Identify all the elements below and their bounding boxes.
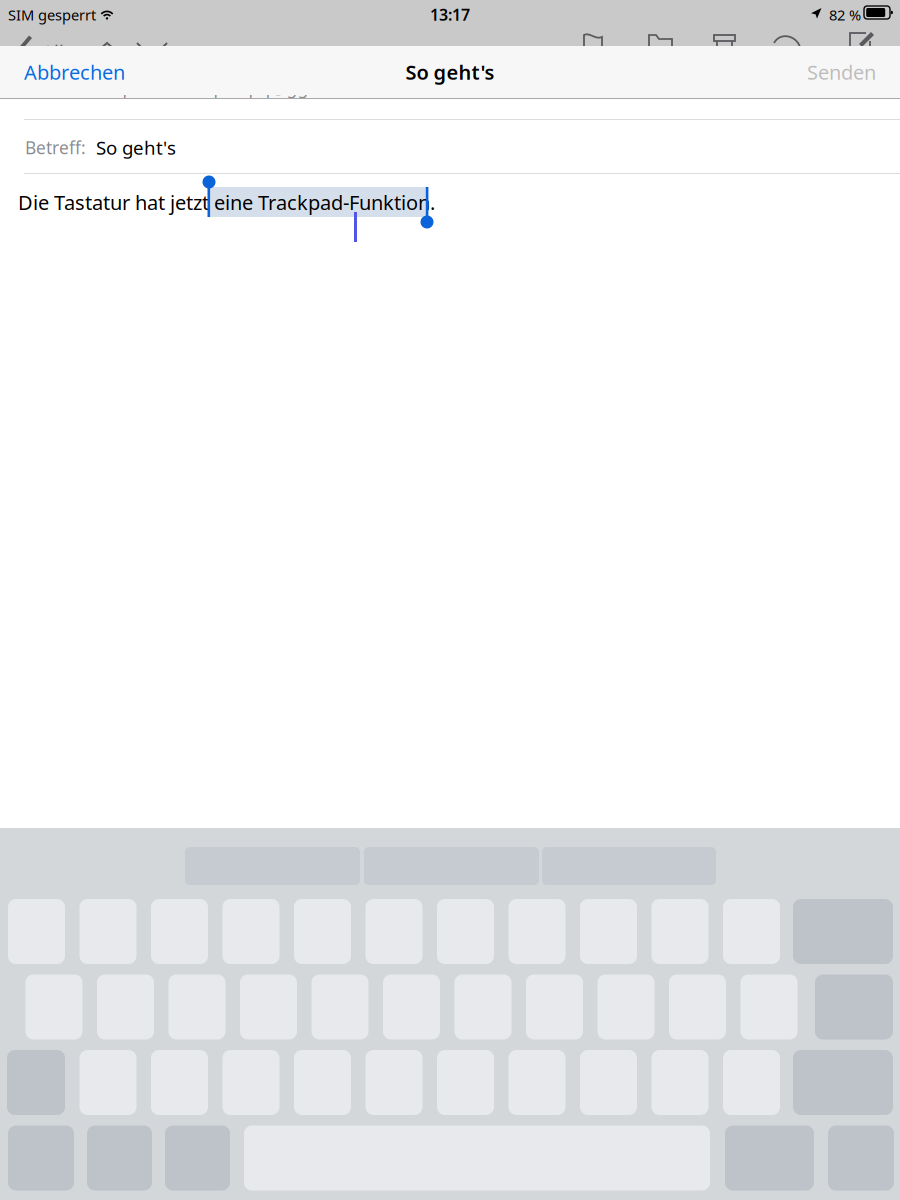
button[interactable]: Key [526, 974, 583, 1039]
button[interactable]: Key [508, 899, 565, 964]
button[interactable]: Key [383, 974, 440, 1039]
staticText: Abbrechen [24, 59, 125, 85]
staticText: SIM gesperrt [8, 5, 96, 24]
button[interactable]: Abbrechen [0, 46, 139, 98]
staticText: So geht's [405, 59, 494, 85]
button[interactable]: Key [222, 1050, 279, 1115]
button[interactable]: Key [454, 974, 511, 1039]
button[interactable]: Key [669, 974, 726, 1039]
staticText: Betreff: [25, 136, 86, 159]
button[interactable]: Senden [793, 46, 900, 98]
button[interactable]: Key [240, 974, 297, 1039]
button[interactable]: Key [168, 974, 225, 1039]
button[interactable]: Key [97, 974, 154, 1039]
staticText: 13:17 [430, 4, 470, 25]
button[interactable]: Key [222, 899, 279, 964]
button[interactable]: Key [508, 1050, 565, 1115]
staticText: Senden [807, 59, 876, 85]
button[interactable]: Key [740, 974, 797, 1039]
staticText: 82 % [829, 5, 861, 24]
staticText: Die Tastatur hat jetzt eine Trackpad-Fun… [18, 189, 435, 216]
staticText: So geht's [96, 135, 176, 160]
staticText: Alle [42, 39, 75, 64]
staticText: Kopie/Blindkopie: pq@gg [101, 76, 308, 99]
